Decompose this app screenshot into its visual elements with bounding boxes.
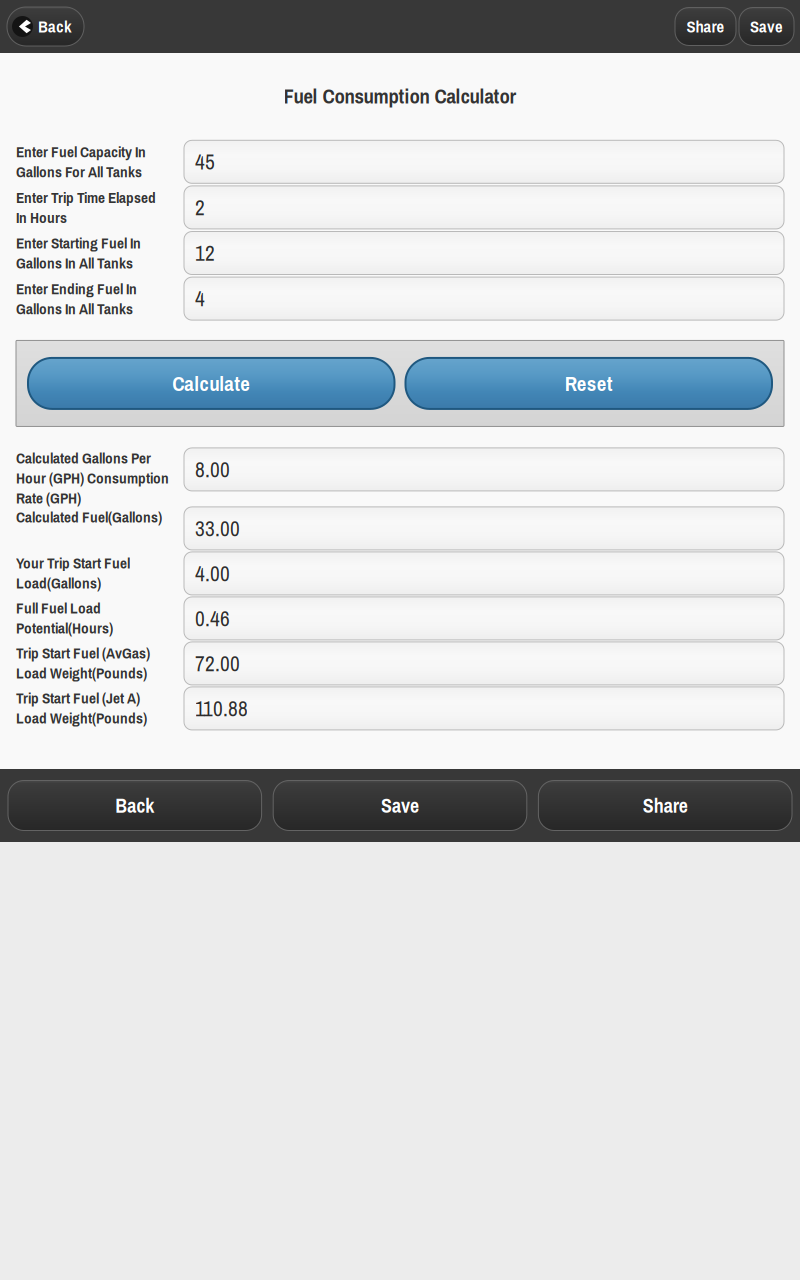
staticText: Full Fuel Load [16, 598, 101, 618]
button[interactable]: Share [675, 7, 736, 45]
staticText: Trip Start Fuel (Jet A) [16, 688, 140, 708]
staticText: 45 [195, 147, 215, 176]
staticText: 12 [195, 239, 215, 267]
staticText: Fuel Consumption Calculator [283, 82, 516, 110]
staticText: Load Weight(Pounds) [16, 663, 147, 683]
staticText: 8.00 [195, 455, 230, 484]
staticText: Load(Gallons) [16, 573, 101, 593]
staticText: Enter Ending Fuel In [16, 278, 137, 299]
staticText: Rate (GPH) [16, 488, 81, 508]
button[interactable]: Back [8, 780, 262, 830]
staticText: 33.00 [195, 514, 240, 543]
staticText: Save [381, 792, 419, 819]
staticText: Gallons For All Tanks [16, 161, 142, 182]
staticText: Hour (GPH) Consumption [16, 468, 169, 488]
button[interactable]: Calculate [28, 358, 394, 409]
staticText: Gallons In All Tanks [16, 298, 133, 319]
staticText: Enter Trip Time Elapsed [16, 187, 156, 208]
staticText: Load Weight(Pounds) [16, 708, 147, 728]
staticText: Share [643, 792, 688, 819]
staticText: Gallons In All Tanks [16, 253, 133, 273]
staticText: 2 [195, 193, 205, 222]
staticText: Back [115, 792, 154, 819]
staticText: 72.00 [195, 649, 240, 678]
staticText: 110.88 [195, 694, 248, 723]
staticText: 0.46 [195, 604, 230, 633]
staticText: Calculate [172, 369, 250, 397]
staticText: 4.00 [195, 559, 230, 588]
staticText: Share [686, 15, 724, 38]
staticText: Reset [565, 369, 613, 397]
staticText: Trip Start Fuel (AvGas) [16, 643, 150, 663]
staticText: In Hours [16, 207, 67, 228]
button[interactable]: Reset [405, 358, 772, 409]
button[interactable]: Share [538, 780, 792, 830]
staticText: Back [38, 15, 72, 38]
staticText: Your Trip Start Fuel [16, 553, 130, 573]
staticText: Save [750, 15, 783, 38]
staticText: 4 [195, 284, 205, 313]
staticText: Enter Fuel Capacity In [16, 141, 146, 162]
button[interactable]: Back [7, 7, 84, 46]
staticText: Enter Starting Fuel In [16, 233, 141, 253]
staticText: Potential(Hours) [16, 618, 113, 638]
button[interactable]: Save [739, 7, 794, 45]
staticText: Calculated Fuel(Gallons) [16, 507, 162, 527]
button[interactable]: Save [273, 780, 527, 830]
staticText: Calculated Gallons Per [16, 448, 151, 468]
